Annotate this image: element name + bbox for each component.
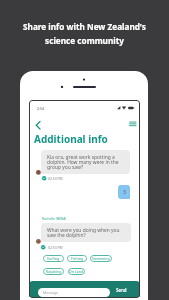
staticText: 3 xyxy=(123,189,126,196)
staticText: Share info with New Zealand's science co… xyxy=(0,21,169,46)
staticText: Kia ora, great work spotting a dolphin. … xyxy=(47,154,123,171)
button[interactable]: Surfing xyxy=(43,255,64,262)
button[interactable]: Menu xyxy=(125,118,139,130)
staticText: Kayaking xyxy=(46,269,62,274)
button[interactable]: Swimming xyxy=(90,255,112,262)
button[interactable]: Message xyxy=(38,288,110,297)
button[interactable]: 3 xyxy=(118,185,130,199)
staticText: What were you doing when you saw the dol… xyxy=(47,227,123,239)
button[interactable]: Back xyxy=(32,118,44,132)
staticText: Rochelle (NIWA) xyxy=(42,217,67,221)
button[interactable]: Send xyxy=(113,287,129,293)
staticText: 02:53 PM xyxy=(48,176,63,181)
staticText: Additional info xyxy=(34,132,108,146)
staticText: 02:53 PM xyxy=(48,245,63,250)
staticText: Surfing xyxy=(47,256,60,261)
staticText: 2:54 xyxy=(37,106,44,111)
button[interactable]: On Land xyxy=(68,268,85,275)
button[interactable]: Kia ora, great work spotting a dolphin. … xyxy=(41,150,130,174)
staticText: Fishing xyxy=(71,256,83,261)
staticText: On Land xyxy=(69,269,84,274)
button[interactable]: Fishing xyxy=(67,255,87,262)
button[interactable]: Kayaking xyxy=(43,268,64,275)
staticText: Swimming xyxy=(92,256,110,261)
button[interactable]: What were you doing when you saw the dol… xyxy=(41,223,131,242)
staticText: Send xyxy=(116,287,127,293)
staticText: Message xyxy=(43,290,58,295)
